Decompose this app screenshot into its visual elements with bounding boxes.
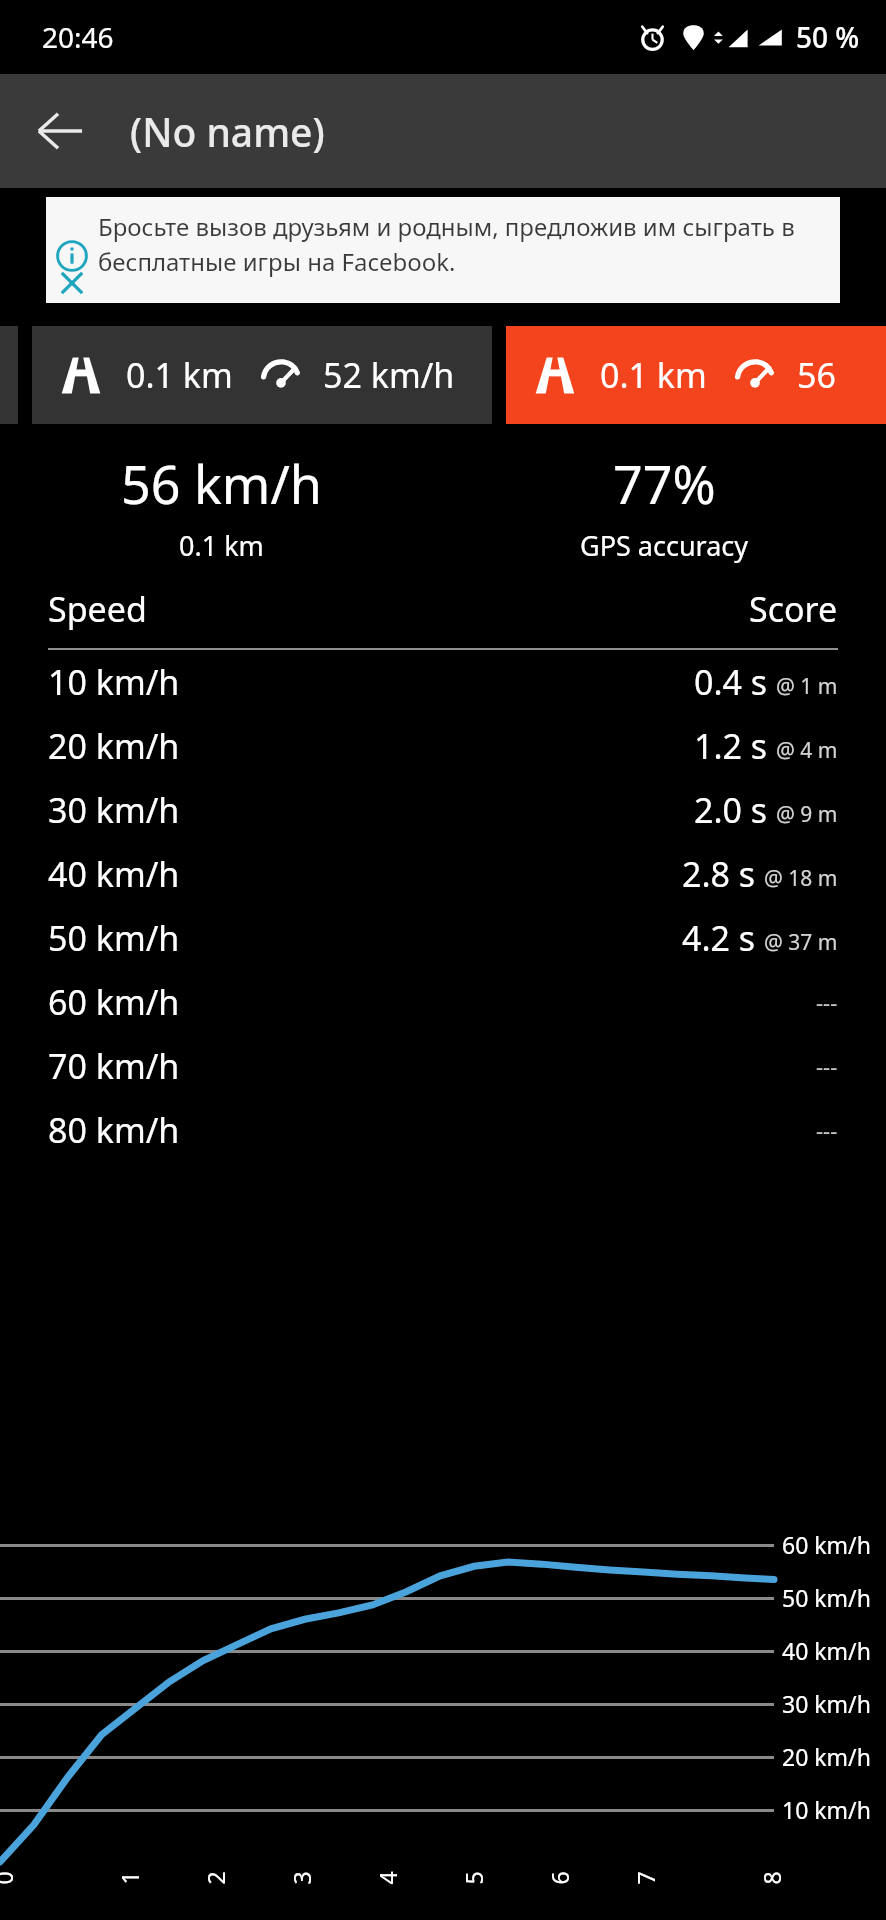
staticText: @ 4 m [776,736,838,765]
staticText: 20 km/h [782,1741,871,1772]
staticText: 0.4 s [694,659,768,705]
staticText: Бросьте вызов друзьям и родным, предложи… [98,210,795,243]
staticText: 60 km/h [782,1529,871,1560]
staticText: --- [816,1115,838,1145]
staticText: 0.1 km [179,527,264,564]
staticText: 1.2 s [694,723,768,769]
button[interactable]: 50 km/h [48,906,838,970]
staticText: @ 1 m [776,672,838,701]
staticText: 80 km/h [48,1107,180,1153]
staticText: 4 [371,1870,402,1884]
staticText: 60 km/h [48,979,180,1025]
button[interactable]: 70 km/h [48,1034,838,1098]
staticText: 5 [457,1870,488,1884]
staticText: 20:46 [42,18,114,56]
button[interactable]: 0.1 km [506,326,886,424]
staticText: GPS accuracy [580,527,749,564]
staticText: 40 km/h [48,851,180,897]
staticText: 0.1 km [600,352,707,398]
button[interactable]: 80 km/h [48,1098,838,1162]
staticText: --- [816,987,838,1017]
staticText: 52 km/h [323,352,455,398]
staticText: @ 18 m [764,864,838,893]
staticText: 2 [199,1870,230,1884]
staticText: (No name) [130,105,325,158]
button[interactable]: 60 km/h [48,970,838,1034]
staticText: 8 [755,1870,786,1884]
button[interactable]: 40 km/h [48,842,838,906]
staticText: 20 km/h [48,723,180,769]
button[interactable]: 0.1 km [32,326,492,424]
button[interactable]: Back [20,91,100,171]
staticText: 30 km/h [48,787,180,833]
staticText: 56 [797,352,836,398]
staticText: --- [816,1051,838,1081]
staticText: Score [749,586,838,632]
staticText: 1 [113,1870,144,1884]
button[interactable]: 30 km/h [48,778,838,842]
staticText: 2.0 s [694,787,768,833]
staticText: Speed [48,586,147,632]
staticText: @ 37 m [764,928,838,957]
staticText: 2.8 s [682,851,756,897]
staticText: 50 km/h [48,915,180,961]
staticText: 0 [0,1870,18,1884]
staticText: 56 km/h [121,448,322,519]
staticText: бесплатные игры на Facebook. [98,245,456,278]
button[interactable]: Close ad [54,265,90,301]
staticText: 70 km/h [48,1043,180,1089]
staticText: 50 km/h [782,1582,871,1613]
staticText: @ 9 m [776,800,838,829]
staticText: 0.1 km [126,352,233,398]
button[interactable]: 10 km/h [48,650,838,714]
staticText: 4.2 s [682,915,756,961]
staticText: 10 km/h [782,1794,871,1825]
staticText: 40 km/h [782,1635,871,1666]
staticText: 10 km/h [48,659,180,705]
staticText: 3 [285,1870,316,1884]
staticText: 7 [629,1870,660,1884]
staticText: 77% [613,448,716,519]
button[interactable]: 20 km/h [48,714,838,778]
staticText: 50 % [796,18,860,56]
staticText: 6 [543,1870,574,1884]
staticText: 30 km/h [782,1688,871,1719]
button[interactable]: Close ad [46,197,840,303]
